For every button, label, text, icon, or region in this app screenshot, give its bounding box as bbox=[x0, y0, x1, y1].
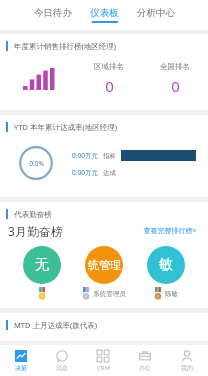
button[interactable]: 查看完整排行榜> bbox=[140, 223, 200, 239]
button[interactable]: 敏 bbox=[145, 246, 187, 300]
staticText: 查看完整排行榜> bbox=[143, 226, 197, 236]
staticText: 0.00万元 bbox=[72, 151, 98, 160]
staticText: 3月勤奋榜 bbox=[8, 223, 63, 239]
button[interactable]: 我的 bbox=[166, 345, 208, 376]
staticText: 消息 bbox=[56, 364, 68, 372]
button[interactable]: 分析中心 bbox=[135, 4, 177, 26]
staticText: 区域排名 bbox=[94, 62, 124, 71]
staticText: 今日待办 bbox=[34, 7, 72, 19]
staticText: 办公 bbox=[139, 364, 151, 372]
button[interactable]: 全国排名 bbox=[142, 62, 208, 96]
staticText: 0.0% bbox=[29, 159, 44, 168]
button[interactable]: 今日待办 bbox=[32, 4, 74, 26]
staticText: 系统管理员 bbox=[93, 290, 126, 298]
staticText: 达成 bbox=[103, 169, 116, 177]
button[interactable]: 决策 bbox=[0, 345, 41, 376]
button[interactable]: 消息 bbox=[41, 345, 82, 376]
staticText: 0.00万元 bbox=[72, 168, 98, 177]
staticText: 无 bbox=[35, 256, 49, 274]
staticText: 全国排名 bbox=[160, 62, 190, 71]
button[interactable]: 区域排名 bbox=[76, 62, 142, 96]
staticText: CRM bbox=[97, 364, 110, 372]
staticText: 决策 bbox=[15, 364, 27, 372]
staticText: 代表勤奋榜 bbox=[14, 210, 52, 219]
staticText: 统管理 bbox=[88, 258, 121, 272]
staticText: MTD 上月达成率(旗代表) bbox=[14, 320, 97, 330]
staticText: 陈敏 bbox=[165, 290, 178, 298]
staticText: 指标 bbox=[103, 152, 116, 160]
button[interactable]: 统管理 bbox=[80, 246, 128, 300]
staticText: 仪表板 bbox=[90, 7, 119, 19]
staticText: 年度累计销售排行榜(地区经理) bbox=[14, 41, 116, 51]
button[interactable]: CRM bbox=[82, 345, 124, 376]
staticText: 我的 bbox=[181, 364, 193, 372]
staticText: 0 bbox=[105, 76, 114, 96]
other: Medal bbox=[154, 287, 162, 300]
staticText: 0 bbox=[171, 76, 180, 96]
other: Medal bbox=[82, 287, 90, 300]
staticText: 敏 bbox=[159, 256, 173, 274]
staticText: YTD 本年累计达成率(地区经理) bbox=[14, 122, 117, 132]
button[interactable]: 无 bbox=[21, 246, 63, 300]
staticText: 分析中心 bbox=[137, 7, 175, 19]
button[interactable]: 仪表板 bbox=[88, 4, 121, 26]
other: Medal bbox=[38, 287, 46, 300]
button[interactable]: 办公 bbox=[124, 345, 166, 376]
